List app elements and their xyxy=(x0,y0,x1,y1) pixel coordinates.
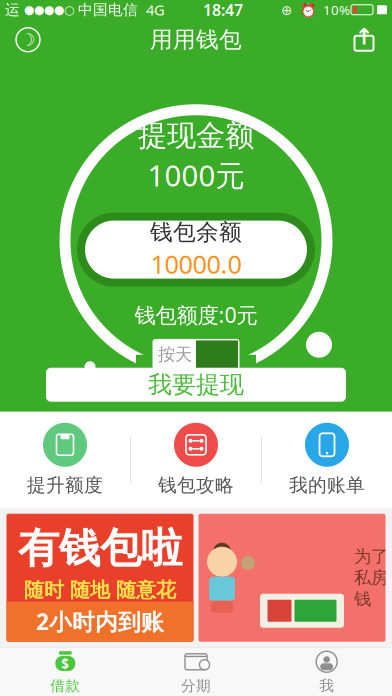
button[interactable]: $ xyxy=(0,645,131,696)
button[interactable]: 提升额度 xyxy=(0,413,130,507)
staticText: 1000元 xyxy=(147,156,244,195)
staticText: 我 xyxy=(319,677,334,695)
staticText: 借款 xyxy=(50,677,80,695)
staticText: 我要提现 xyxy=(148,370,244,399)
staticText: ↑ xyxy=(354,24,373,50)
staticText: 提现金额 xyxy=(138,118,254,154)
staticText: 随时 随地 随意花 xyxy=(24,578,176,602)
staticText: 4G xyxy=(138,0,165,19)
staticText: 中国电信 xyxy=(78,1,138,19)
staticText: 我的账单 xyxy=(289,474,365,497)
staticText: 10000.0 xyxy=(150,247,241,281)
staticText: 有钱包啦 xyxy=(18,523,182,574)
staticText: 提升额度 xyxy=(27,474,103,497)
staticText: ☽ xyxy=(20,30,36,50)
button[interactable]: 我 xyxy=(261,645,392,696)
staticText: 2小时内到账 xyxy=(36,606,164,636)
staticText: ⊕ ⏰ 10% xyxy=(281,1,350,19)
button[interactable]: 客服电话 xyxy=(6,20,50,60)
button[interactable]: 按天 xyxy=(152,339,239,370)
staticText: 为了 私房 钱 xyxy=(354,546,388,610)
button[interactable]: 我的账单 xyxy=(262,413,392,507)
staticText: ●●●●○ xyxy=(20,3,78,16)
staticText: 按天 xyxy=(158,344,192,365)
staticText: 18:47 xyxy=(203,0,243,20)
staticText: $ xyxy=(61,655,69,672)
button[interactable]: 分期 xyxy=(131,645,261,696)
staticText: 钱包攻略 xyxy=(158,474,234,497)
button[interactable]: 我要提现 xyxy=(46,368,346,402)
button[interactable]: 有钱包啦活动 xyxy=(6,514,193,642)
staticText: 钱包额度:0元 xyxy=(134,301,257,329)
staticText: 运 xyxy=(5,1,20,19)
staticText: 分期 xyxy=(181,677,211,695)
button[interactable]: 分享 xyxy=(342,20,386,60)
button[interactable]: 为了私房钱活动 xyxy=(198,514,385,642)
staticText: 钱包余额 xyxy=(150,218,242,246)
button[interactable]: 钱包攻略 xyxy=(131,413,261,507)
staticText: 用用钱包 xyxy=(150,26,242,54)
